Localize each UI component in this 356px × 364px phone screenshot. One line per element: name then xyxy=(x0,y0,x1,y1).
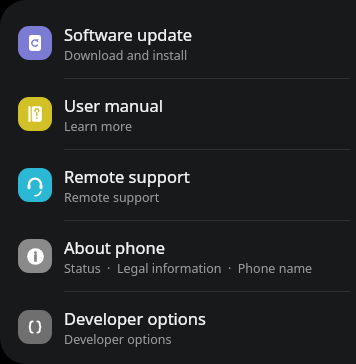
staticText: Download and install xyxy=(64,47,188,64)
staticText: Remote support xyxy=(64,165,190,187)
staticText: User manual xyxy=(64,94,163,116)
button[interactable]: About phone xyxy=(0,221,356,291)
staticText: Remote support xyxy=(64,189,160,206)
staticText: Developer options xyxy=(64,331,172,348)
staticText: Developer options xyxy=(64,307,206,329)
button[interactable]: Software update xyxy=(0,8,356,78)
button[interactable]: Remote support xyxy=(0,150,356,220)
staticText: Status · Legal information · Phone name xyxy=(64,260,313,277)
staticText: Software update xyxy=(64,23,192,45)
staticText: Learn more xyxy=(64,118,132,135)
staticText: About phone xyxy=(64,236,165,258)
button[interactable]: Developer options xyxy=(0,292,356,362)
button[interactable]: User manual xyxy=(0,79,356,149)
